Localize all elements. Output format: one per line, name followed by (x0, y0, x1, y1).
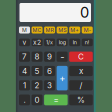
button[interactable]: 1/x (44, 39, 55, 46)
staticText: ln (73, 39, 77, 46)
staticText: 3 (47, 80, 52, 90)
button[interactable]: 9 (44, 52, 55, 62)
button[interactable]: 6 (44, 66, 55, 76)
button[interactable]: n! (82, 39, 93, 46)
staticText: 0 (34, 95, 39, 105)
staticText: 1 (23, 80, 26, 90)
button[interactable]: M- (82, 26, 93, 33)
button[interactable]: x (69, 66, 93, 76)
button[interactable]: . (19, 94, 30, 105)
staticText: / (79, 80, 82, 90)
staticText: 8 (34, 52, 39, 62)
button[interactable]: M+ (69, 26, 80, 33)
staticText: M- (84, 27, 91, 33)
button[interactable]: ln (69, 39, 80, 46)
staticText: - (60, 51, 64, 62)
staticText: = (53, 95, 58, 105)
staticText: M (22, 27, 27, 33)
button[interactable]: 3 (44, 80, 55, 90)
button[interactable]: M (19, 26, 30, 33)
button[interactable]: = (44, 94, 68, 105)
button[interactable]: x2 (31, 39, 42, 46)
button[interactable]: log (57, 39, 68, 46)
button[interactable]: 8 (31, 52, 42, 62)
staticText: 6 (47, 66, 52, 76)
button[interactable]: 4 (19, 66, 30, 76)
staticText: 9 (47, 52, 52, 62)
button[interactable]: 1 (19, 80, 30, 90)
staticText: 4 (22, 66, 27, 76)
staticText: log (59, 39, 66, 46)
staticText: . (23, 95, 25, 105)
button[interactable]: / (69, 80, 93, 90)
staticText: MR (46, 27, 54, 33)
button[interactable]: MC (31, 26, 42, 33)
button[interactable]: 2 (31, 80, 42, 90)
button[interactable]: % (69, 94, 93, 105)
staticText: 0 (80, 4, 89, 21)
button[interactable]: MS (57, 26, 68, 33)
button[interactable]: 0 (31, 94, 42, 105)
button[interactable]: 5 (31, 66, 42, 76)
staticText: n! (85, 39, 90, 46)
staticText: MS (58, 27, 66, 33)
button[interactable]: - (57, 52, 68, 62)
staticText: v (22, 38, 26, 46)
staticText: C (78, 52, 84, 62)
staticText: % (77, 95, 85, 105)
staticText: 5 (34, 66, 39, 76)
staticText: M+ (70, 27, 79, 33)
staticText: x2 (33, 38, 41, 46)
staticText: MC (32, 27, 41, 33)
staticText: x (79, 66, 83, 76)
staticText: 2 (34, 80, 39, 90)
staticText: 1/x (46, 39, 53, 46)
button[interactable]: v (19, 39, 30, 46)
staticText: 7 (22, 52, 27, 62)
button[interactable]: 7 (19, 52, 30, 62)
staticText: + (59, 72, 65, 84)
button[interactable]: MR (44, 26, 55, 33)
button[interactable]: C (69, 52, 93, 62)
button[interactable]: + (57, 66, 68, 90)
